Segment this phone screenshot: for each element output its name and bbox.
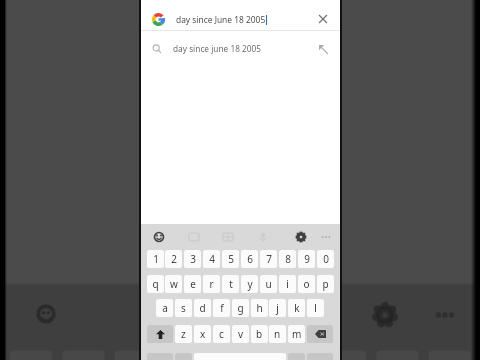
staticText: i (286, 277, 289, 291)
button[interactable]: x (194, 325, 211, 343)
button[interactable]: r (203, 275, 220, 293)
button[interactable]: o (298, 275, 315, 293)
staticText: l (314, 301, 317, 315)
button[interactable]: Emoji (148, 226, 170, 248)
button[interactable]: p (317, 275, 334, 293)
button[interactable]: Clear search (312, 8, 334, 30)
staticText: s (181, 301, 186, 315)
staticText: b (256, 327, 263, 341)
staticText: j (276, 301, 279, 315)
button[interactable]: u (260, 275, 277, 293)
staticText: q (152, 277, 159, 291)
button[interactable]: d (194, 299, 211, 317)
staticText: a (162, 301, 168, 315)
staticText: g (237, 301, 244, 315)
staticText: y (247, 277, 253, 291)
button[interactable]: i (279, 275, 296, 293)
button[interactable]: f (213, 299, 230, 317)
button[interactable]: Backspace (307, 325, 333, 343)
button[interactable]: Shift (147, 325, 173, 343)
button[interactable]: 7 (260, 250, 277, 268)
staticText: day since June 18 2005 (176, 14, 266, 25)
button[interactable]: GIF (183, 226, 205, 248)
button[interactable]: g (232, 299, 249, 317)
staticText: h (256, 301, 263, 315)
staticText: 8 (285, 252, 291, 266)
staticText: m (292, 327, 302, 341)
staticText: 9 (304, 252, 310, 266)
button[interactable]: n (269, 325, 286, 343)
staticText: 4 (209, 252, 215, 266)
staticText: 2 (171, 252, 177, 266)
staticText: 5 (228, 252, 234, 266)
button[interactable]: z (175, 325, 192, 343)
button[interactable]: c (213, 325, 230, 343)
button[interactable]: 2 (165, 250, 182, 268)
button[interactable]: Insert suggestion (312, 38, 334, 60)
button[interactable]: Stickers (217, 226, 239, 248)
staticText: u (265, 277, 272, 291)
staticText: 6 (247, 252, 253, 266)
button[interactable]: t (222, 275, 239, 293)
button[interactable]: w (165, 275, 182, 293)
button[interactable]: 8 (279, 250, 296, 268)
button[interactable]: More options (315, 226, 337, 248)
button[interactable]: 3 (184, 250, 201, 268)
staticText: f (220, 301, 224, 315)
button[interactable]: s (175, 299, 192, 317)
staticText: c (219, 327, 224, 341)
button[interactable]: b (251, 325, 268, 343)
button[interactable]: v (232, 325, 249, 343)
button[interactable]: 5 (222, 250, 239, 268)
staticText: z (181, 327, 186, 341)
staticText: 1 (153, 252, 159, 266)
staticText: 0 (323, 252, 329, 266)
button[interactable]: k (288, 299, 305, 317)
staticText: v (238, 327, 244, 341)
staticText: t (229, 277, 233, 291)
button[interactable]: q (147, 275, 164, 293)
staticText: k (294, 301, 300, 315)
button[interactable]: e (184, 275, 201, 293)
staticText: 7 (266, 252, 272, 266)
staticText: x (200, 327, 206, 341)
button[interactable]: day since June 18 2005 (141, 4, 340, 34)
button[interactable]: j (269, 299, 286, 317)
staticText: r (209, 277, 214, 291)
button[interactable]: l (307, 299, 324, 317)
staticText: day since june 18 2005 (173, 43, 262, 54)
button[interactable]: 1 (147, 250, 164, 268)
button[interactable]: h (251, 299, 268, 317)
staticText: o (303, 277, 310, 291)
staticText: 3 (190, 252, 196, 266)
button[interactable]: m (288, 325, 305, 343)
staticText: p (322, 277, 329, 291)
button[interactable]: 4 (203, 250, 220, 268)
staticText: w (170, 277, 178, 291)
staticText: d (199, 301, 206, 315)
button[interactable]: 0 (317, 250, 334, 268)
button[interactable]: 6 (241, 250, 258, 268)
button[interactable]: Settings (290, 226, 312, 248)
staticText: e (190, 277, 196, 291)
staticText: n (274, 327, 281, 341)
button[interactable]: a (156, 299, 173, 317)
button[interactable]: day since june 18 2005 (141, 34, 340, 63)
button[interactable]: 9 (298, 250, 315, 268)
button[interactable]: y (241, 275, 258, 293)
